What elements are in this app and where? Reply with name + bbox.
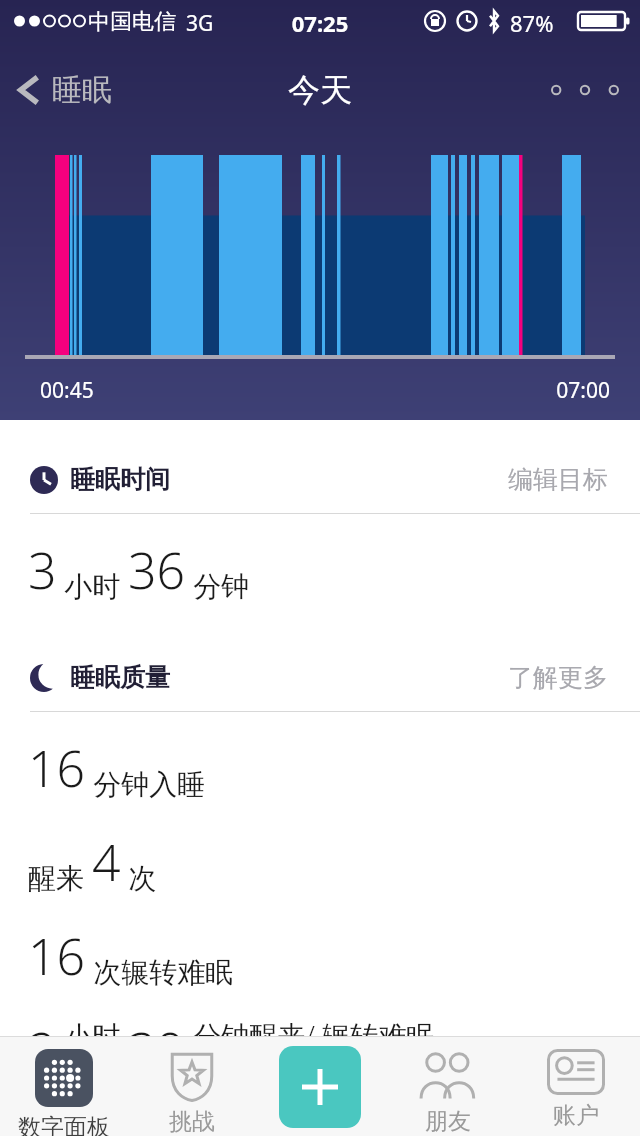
button[interactable]: 朋友 bbox=[384, 1037, 512, 1136]
staticText: 数字面板 bbox=[18, 1113, 110, 1136]
button[interactable]: 3 bbox=[28, 536, 640, 604]
staticText: 睡眠质量 bbox=[70, 662, 170, 693]
staticText: 了解更多 bbox=[508, 662, 608, 693]
staticText: 挑战 bbox=[169, 1107, 215, 1136]
staticText: 16 bbox=[28, 734, 86, 802]
staticText: 2 bbox=[28, 1016, 57, 1036]
button[interactable]: 16 bbox=[28, 734, 640, 802]
staticText: 3G bbox=[186, 9, 214, 38]
staticText: 分钟 bbox=[186, 566, 250, 604]
staticText: 小时 bbox=[57, 566, 128, 604]
button[interactable]: Add bbox=[279, 1046, 361, 1128]
staticText: 朋友 bbox=[425, 1107, 471, 1136]
staticText: 今天 bbox=[288, 70, 352, 110]
staticText: 分钟入睡 bbox=[86, 764, 206, 802]
button[interactable]: 2 bbox=[28, 1016, 640, 1036]
staticText: 中国电信 bbox=[88, 8, 176, 36]
staticText: 醒来 bbox=[28, 858, 92, 896]
button[interactable]: 16 bbox=[28, 922, 640, 990]
staticText: 16 bbox=[28, 922, 86, 990]
staticText: 4 bbox=[92, 828, 121, 896]
staticText: 39 bbox=[128, 1016, 186, 1036]
button[interactable]: More options bbox=[530, 64, 640, 116]
staticText: 3 bbox=[28, 536, 57, 604]
staticText: 87% bbox=[510, 8, 554, 38]
staticText: 次辗转难眠 bbox=[86, 952, 234, 990]
staticText: 07:00 bbox=[0, 376, 610, 405]
button[interactable]: 了解更多 bbox=[502, 656, 614, 699]
staticText: 分钟醒来/ 辗转难眠 bbox=[186, 1016, 435, 1036]
staticText: 36 bbox=[128, 536, 186, 604]
staticText: 账户 bbox=[553, 1101, 599, 1130]
button[interactable]: 账户 bbox=[512, 1037, 640, 1136]
button[interactable]: 数字面板 bbox=[0, 1037, 128, 1136]
button[interactable]: 编辑目标 bbox=[502, 458, 614, 501]
staticText: 小时 bbox=[57, 1016, 128, 1036]
staticText: 睡眠 bbox=[52, 71, 112, 109]
staticText: 次 bbox=[121, 858, 157, 896]
button[interactable]: 挑战 bbox=[128, 1037, 256, 1136]
staticText: 编辑目标 bbox=[508, 464, 608, 495]
staticText: 00:45 bbox=[40, 376, 94, 405]
staticText: 睡眠时间 bbox=[70, 464, 170, 495]
button[interactable]: 睡眠 bbox=[0, 62, 124, 118]
staticText: 07:25 bbox=[0, 8, 640, 38]
button[interactable]: 醒来 bbox=[28, 828, 640, 896]
